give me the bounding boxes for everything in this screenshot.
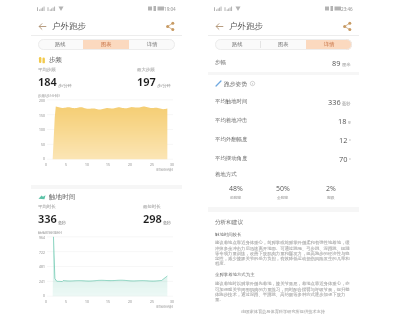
staticText: 12	[339, 135, 348, 145]
staticText: 平均摆动角度	[215, 155, 248, 162]
staticText: 路线	[232, 41, 243, 48]
staticText: 15	[106, 162, 110, 167]
staticText: 全脚掌	[277, 195, 289, 200]
button[interactable]: Back	[213, 20, 226, 33]
staticText: 详情	[324, 41, 335, 48]
staticText: 30	[170, 299, 174, 304]
staticText: 图表	[101, 41, 112, 48]
staticText: 路线	[55, 41, 66, 48]
staticText: 户外跑步	[229, 21, 263, 32]
staticText: 分析和建议	[215, 219, 243, 226]
staticText: 30	[170, 162, 174, 167]
staticText: 50	[41, 142, 45, 147]
staticText: 50%	[276, 184, 290, 194]
button[interactable]: 平均触地时间	[208, 92, 359, 111]
staticText: 184	[38, 74, 57, 89]
staticText: 197	[137, 74, 156, 89]
staticText: 10	[85, 162, 89, 167]
staticText: 时间(分钟)	[31, 167, 173, 172]
button[interactable]: 步幅	[208, 53, 359, 72]
staticText: 厘米	[342, 62, 351, 67]
staticText: 20	[128, 162, 132, 167]
button[interactable]: 详情	[129, 39, 175, 50]
staticText: 跑步姿势	[224, 80, 248, 87]
staticText: 建议着地点靠近身体重心，前脚掌或前脚掌外侧柔和有弹性地着地，缓冲掉多余冲击力后迅…	[215, 240, 351, 266]
staticText: 23:46	[341, 6, 353, 12]
button[interactable]: 路线	[38, 39, 83, 50]
staticText: 200	[39, 98, 45, 103]
staticText: 触地时间	[49, 193, 76, 201]
staticText: g	[348, 119, 351, 125]
staticText: 最短时长	[143, 204, 161, 210]
staticText: 5	[65, 162, 67, 167]
staticText: 毫秒	[163, 220, 171, 225]
staticText: 步频(步/分钟)	[38, 93, 60, 98]
button[interactable]: 平均着地冲击	[208, 111, 359, 130]
staticText: 70	[339, 154, 348, 164]
staticText: 建议着地时以脚掌外侧先着地，膝关节微屈，着地点靠近身体重心，亦可加强髋关节周围肌…	[215, 281, 351, 302]
staticText: °	[349, 138, 351, 144]
staticText: 964	[39, 235, 45, 240]
button[interactable]: 详情	[306, 39, 352, 50]
button[interactable]: Back	[36, 20, 49, 33]
staticText: 0	[45, 299, 47, 304]
staticText: 481	[39, 264, 45, 269]
staticText: 722	[39, 250, 45, 255]
staticText: 336	[328, 97, 341, 107]
staticText: 2%	[326, 184, 336, 194]
staticText: 步/分钟	[157, 83, 171, 88]
staticText: 由国家体育总局体育科学研究所提供技术支持	[215, 309, 351, 314]
staticText: 0	[45, 162, 47, 167]
staticText: 毫秒	[342, 101, 351, 106]
staticText: 最大步频	[137, 67, 155, 73]
staticText: 19:04	[164, 6, 176, 12]
staticText: 89	[332, 58, 341, 68]
staticText: 336	[38, 211, 57, 226]
staticText: 100	[39, 127, 45, 132]
staticText: 25	[150, 162, 154, 167]
staticText: 平均步频	[38, 67, 56, 73]
button[interactable]: 平均外翻幅度	[208, 130, 359, 149]
staticText: 298	[143, 211, 162, 226]
button[interactable]: Share	[164, 20, 176, 32]
staticText: 平均触地时间	[215, 98, 248, 105]
button[interactable]: 图表	[83, 39, 129, 50]
staticText: 5	[65, 299, 67, 304]
staticText: 图表	[278, 41, 289, 48]
staticText: 20	[128, 299, 132, 304]
button[interactable]: Share	[341, 20, 353, 32]
staticText: 25	[150, 299, 154, 304]
button[interactable]: 图表	[260, 39, 306, 50]
staticText: 全脚掌着地方式为主	[215, 272, 255, 278]
staticText: °	[349, 157, 351, 163]
button[interactable]: 平均摆动角度	[208, 149, 359, 168]
staticText: 时间(分钟)	[31, 304, 173, 309]
staticText: 平均时长	[38, 204, 56, 210]
staticText: 步频	[49, 56, 63, 64]
staticText: 着地方式	[215, 171, 237, 178]
staticText: 步/分钟	[58, 83, 72, 88]
staticText: 触地时间(毫秒)	[38, 230, 62, 235]
button[interactable]: 路线	[215, 39, 260, 50]
staticText: 18	[338, 116, 347, 126]
staticText: 脚跟	[327, 195, 335, 200]
staticText: 前脚掌	[230, 195, 242, 200]
staticText: 平均着地冲击	[215, 117, 248, 124]
staticText: 步幅	[215, 59, 226, 66]
staticText: 毫秒	[58, 220, 66, 225]
staticText: 0	[43, 293, 45, 298]
staticText: 15	[106, 299, 110, 304]
staticText: 48%	[229, 184, 243, 194]
staticText: 户外跑步	[52, 21, 86, 32]
staticText: 0	[43, 156, 45, 161]
staticText: 241	[39, 279, 45, 284]
staticText: 触地时间较长	[215, 232, 242, 238]
staticText: 平均外翻幅度	[215, 136, 248, 143]
staticText: 详情	[147, 41, 158, 48]
staticText: 150	[39, 113, 45, 118]
staticText: 10	[85, 299, 89, 304]
